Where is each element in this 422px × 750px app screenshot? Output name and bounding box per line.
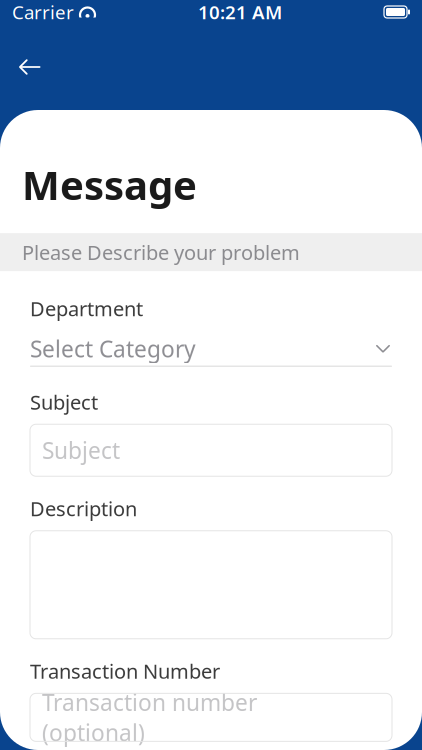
button[interactable]: Transaction number (optional) [30, 693, 392, 741]
staticText: Message [22, 158, 197, 211]
staticText: Transaction number (optional) [42, 687, 257, 747]
button[interactable]: Back [8, 45, 52, 89]
staticText: Select Category [30, 334, 196, 364]
staticText: Carrier [12, 0, 74, 24]
staticText: Please Describe your problem [22, 239, 300, 265]
staticText: Description [30, 495, 137, 522]
staticText: Subject [42, 435, 120, 465]
staticText: Department [30, 295, 143, 322]
button[interactable]: Select Category [30, 332, 392, 367]
staticText: Transaction Number [30, 658, 220, 684]
staticText: 10:21 AM [198, 0, 282, 24]
button[interactable]: Subject [30, 424, 392, 476]
staticText: Subject [30, 389, 98, 415]
